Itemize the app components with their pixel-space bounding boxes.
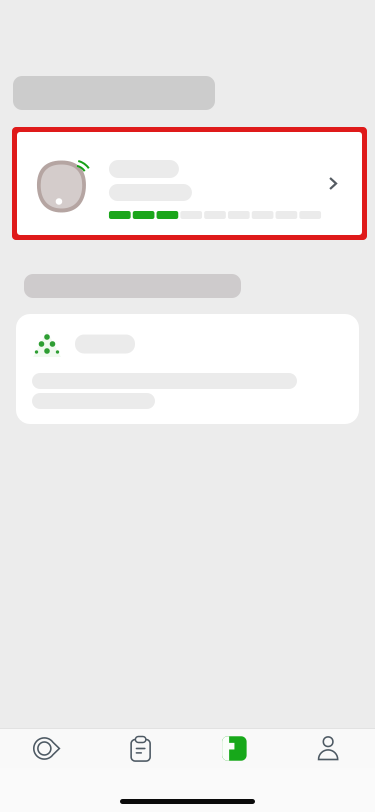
button[interactable]: Journal: [94, 729, 188, 768]
button[interactable]: Scan: [0, 729, 94, 768]
button[interactable]: Home: [187, 729, 281, 768]
button[interactable]: [12, 127, 367, 240]
button[interactable]: Profile: [281, 729, 375, 768]
